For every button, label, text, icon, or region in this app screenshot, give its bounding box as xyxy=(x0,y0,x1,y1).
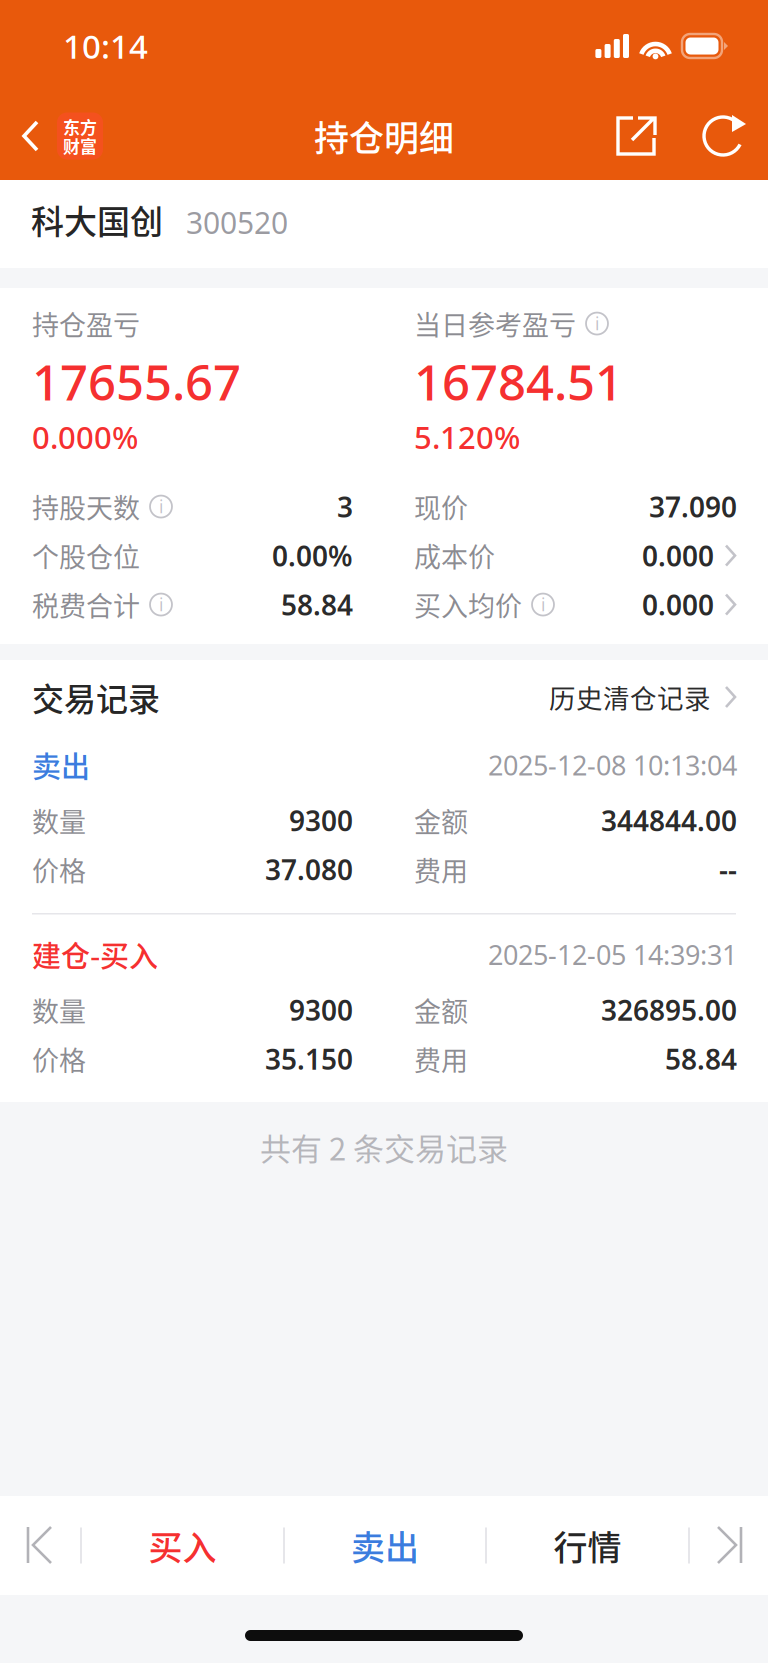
button[interactable]: 买入 xyxy=(82,1496,283,1595)
staticText: 58.84 xyxy=(665,1040,737,1078)
staticText: 费用 xyxy=(414,850,468,889)
staticText: 35.150 xyxy=(265,1040,353,1078)
staticText: i xyxy=(159,593,163,616)
button[interactable]: 返回 xyxy=(0,92,113,180)
staticText: 科大国创 xyxy=(31,196,163,243)
staticText: 卖出 xyxy=(351,1521,419,1570)
staticText: 持股天数 xyxy=(32,487,140,526)
staticText: -- xyxy=(719,850,737,888)
staticText: 买入均价 xyxy=(414,585,522,624)
staticText: 成本价 xyxy=(414,536,495,575)
staticText: 0.000 xyxy=(642,585,714,624)
staticText: 个股仓位 xyxy=(32,536,140,575)
button[interactable]: 刷新 xyxy=(680,92,768,180)
button[interactable]: 下一只 xyxy=(690,1496,768,1595)
staticText: 行情 xyxy=(553,1521,621,1570)
staticText: 0.000% xyxy=(32,416,138,458)
button[interactable]: 历史清仓记录 xyxy=(549,660,737,734)
staticText: 5.120% xyxy=(414,416,520,458)
staticText: 2025-12-08 10:13:04 xyxy=(488,747,737,783)
staticText: 17655.67 xyxy=(32,348,241,415)
staticText: 326895.00 xyxy=(601,991,737,1029)
staticText: 建仓-买入 xyxy=(32,933,158,975)
staticText: 58.84 xyxy=(281,585,353,624)
staticText: 9300 xyxy=(289,991,353,1029)
button[interactable]: 分享 xyxy=(592,92,680,180)
staticText: 344844.00 xyxy=(601,801,737,839)
staticText: i xyxy=(595,312,599,335)
staticText: 2025-12-05 14:39:31 xyxy=(488,936,737,973)
staticText: 金额 xyxy=(414,990,468,1030)
staticText: 持仓盈亏 xyxy=(32,304,140,343)
staticText: 交易记录 xyxy=(32,674,160,720)
staticText: 10:14 xyxy=(63,23,148,68)
staticText: 数量 xyxy=(32,801,86,840)
button[interactable]: 卖出 xyxy=(285,1496,485,1595)
staticText: 买入 xyxy=(148,1521,216,1570)
staticText: 税费合计 xyxy=(32,585,140,624)
staticText: 3 xyxy=(337,487,353,526)
staticText: 数量 xyxy=(32,990,86,1030)
staticText: 价格 xyxy=(32,1039,86,1079)
staticText: 持仓明细 xyxy=(314,111,454,161)
staticText: 金额 xyxy=(414,801,468,840)
staticText: 当日参考盈亏 xyxy=(414,304,576,343)
button[interactable]: 上一只 xyxy=(0,1496,80,1595)
staticText: 财富 xyxy=(63,133,97,158)
staticText: 16784.51 xyxy=(414,348,623,415)
staticText: 历史清仓记录 xyxy=(549,678,711,716)
staticText: 价格 xyxy=(32,850,86,889)
staticText: 东方 xyxy=(63,114,97,139)
staticText: i xyxy=(159,495,163,518)
staticText: i xyxy=(541,593,545,616)
staticText: 300520 xyxy=(186,202,288,243)
staticText: 现价 xyxy=(414,487,468,526)
button[interactable]: 行情 xyxy=(487,1496,688,1595)
staticText: 37.090 xyxy=(649,487,737,526)
staticText: 37.080 xyxy=(265,850,353,888)
staticText: 0.00% xyxy=(272,536,353,575)
staticText: 卖出 xyxy=(32,744,90,786)
staticText: 0.000 xyxy=(642,536,714,575)
staticText: 共有 2 条交易记录 xyxy=(260,1125,508,1169)
staticText: 9300 xyxy=(289,801,353,839)
staticText: 费用 xyxy=(414,1039,468,1079)
